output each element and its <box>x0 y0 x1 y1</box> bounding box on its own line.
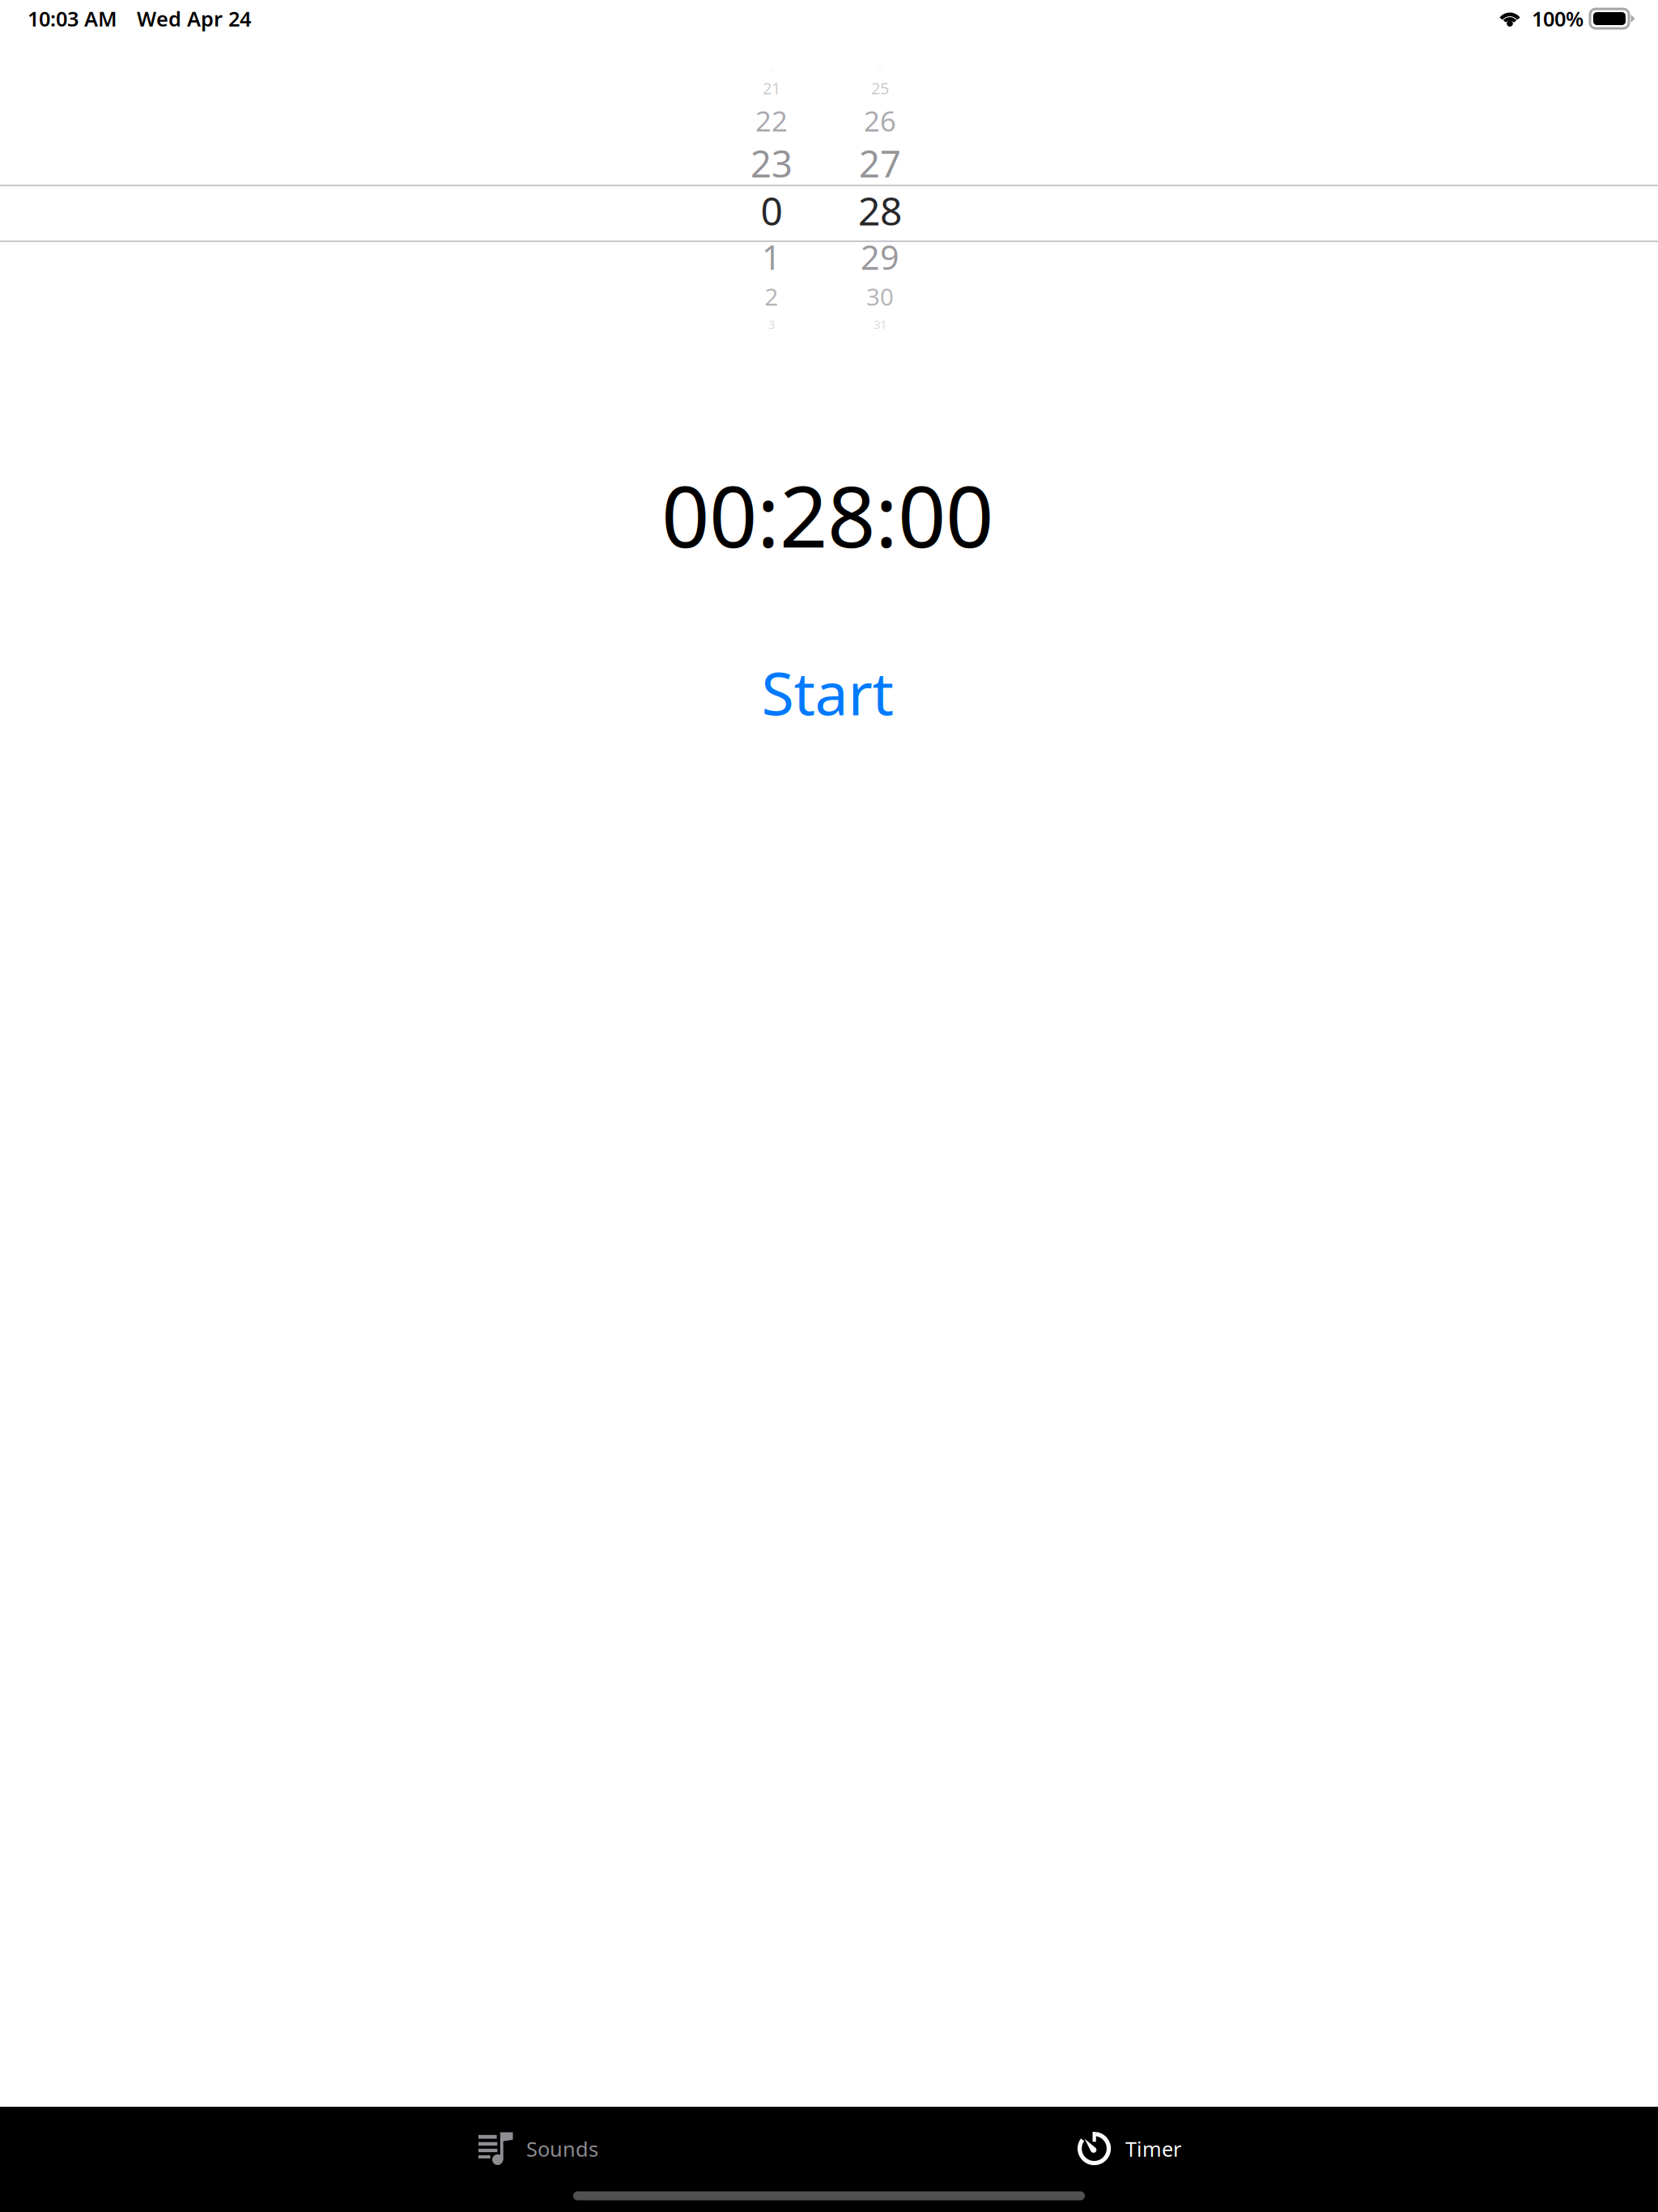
staticText: 28 <box>858 185 902 236</box>
staticText: 20 <box>769 66 774 72</box>
staticText: Sounds <box>526 2135 598 2162</box>
staticText: Wed Apr 24 <box>137 5 251 32</box>
staticText: 29 <box>861 235 899 279</box>
staticText: Timer <box>1125 2135 1181 2162</box>
staticText: 2 <box>765 281 778 312</box>
button[interactable]: Hours <box>723 49 820 372</box>
button[interactable]: Sounds <box>405 2110 672 2188</box>
button[interactable]: Minutes <box>831 49 929 372</box>
staticText: 26 <box>864 102 896 139</box>
staticText: 22 <box>755 102 788 139</box>
staticText: 100% <box>1532 5 1584 32</box>
staticText: 1 <box>762 235 781 279</box>
staticText: Start <box>761 653 893 732</box>
staticText: 27 <box>859 139 901 188</box>
staticText: 23 <box>750 139 793 188</box>
staticText: 30 <box>866 281 894 312</box>
staticText: 10:03 AM <box>28 5 117 32</box>
staticText: 0 <box>761 185 782 236</box>
staticText: 21 <box>763 77 780 99</box>
button[interactable]: Timer <box>996 2110 1263 2188</box>
staticText: 00:28:00 <box>661 459 993 571</box>
button[interactable]: Start <box>690 644 965 741</box>
staticText: 24 <box>878 66 882 72</box>
staticText: 31 <box>874 316 886 332</box>
staticText: 25 <box>871 77 889 99</box>
staticText: 3 <box>768 316 775 332</box>
